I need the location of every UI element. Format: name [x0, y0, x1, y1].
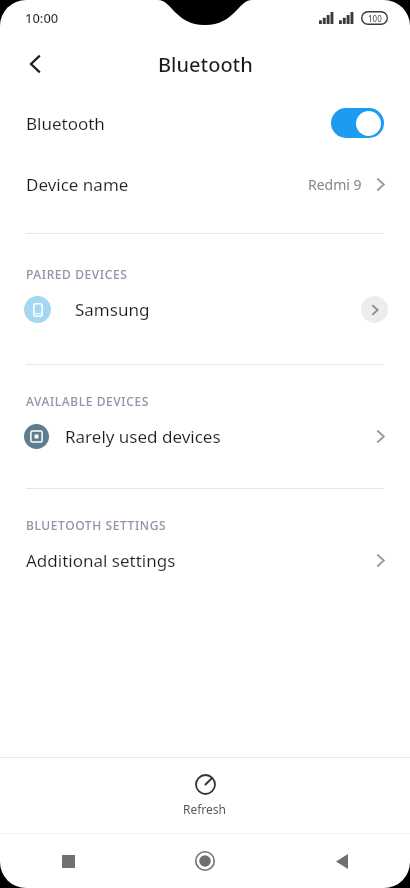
- staticText: Rarely used devices: [65, 425, 221, 448]
- staticText: PAIRED DEVICES: [26, 266, 128, 282]
- staticText: Bluetooth: [158, 51, 253, 78]
- staticText: Additional settings: [26, 549, 176, 572]
- staticText: AVAILABLE DEVICES: [26, 393, 149, 409]
- button[interactable]: Bluetooth: [0, 92, 410, 154]
- staticText: Bluetooth: [26, 112, 105, 135]
- staticText: Redmi 9: [308, 175, 362, 194]
- staticText: BLUETOOTH SETTINGS: [26, 517, 167, 533]
- button[interactable]: Back: [12, 40, 60, 88]
- staticText: 100: [368, 13, 382, 24]
- staticText: Samsung: [75, 298, 150, 321]
- button[interactable]: Recent apps: [0, 834, 136, 888]
- button[interactable]: Refresh: [0, 758, 410, 833]
- button[interactable]: Home: [136, 834, 273, 888]
- staticText: 10:00: [25, 9, 59, 27]
- button[interactable]: Device name: [0, 154, 410, 214]
- staticText: Device name: [26, 173, 129, 196]
- button[interactable]: Back: [273, 834, 410, 888]
- staticText: Refresh: [183, 801, 227, 817]
- button[interactable]: Additional settings: [0, 533, 410, 587]
- button[interactable]: Rarely used devices: [0, 409, 410, 463]
- button[interactable]: Samsung: [0, 282, 410, 336]
